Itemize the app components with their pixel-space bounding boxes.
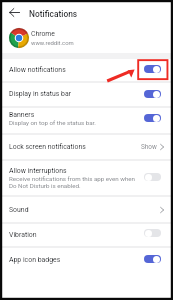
staticText: Banners — [9, 111, 35, 119]
button[interactable]: Toggle off — [144, 173, 161, 181]
button[interactable]: Toggle off — [144, 229, 161, 237]
button[interactable]: Toggle on — [144, 255, 161, 263]
button[interactable]: Banners — [2, 108, 171, 133]
staticText: www.reddit.com — [31, 40, 74, 47]
staticText: Allow notifications — [9, 66, 66, 74]
staticText: App icon badges — [9, 256, 61, 264]
staticText: Receive notifications from this app even… — [9, 175, 135, 189]
button[interactable]: Allow interruptions — [2, 161, 171, 195]
button[interactable]: Toggle on — [144, 114, 161, 122]
staticText: Lock screen notifications — [9, 143, 86, 151]
button[interactable]: Display in status bar — [2, 83, 171, 106]
staticText: Show — [141, 143, 157, 151]
staticText: Sound — [9, 206, 29, 214]
button[interactable]: Vibration — [2, 224, 171, 246]
button[interactable]: Allow notifications — [2, 59, 171, 81]
staticText: Allow interruptions — [9, 167, 67, 175]
button[interactable]: Chrome — [2, 26, 171, 53]
button[interactable]: Back — [8, 6, 21, 19]
staticText: Vibration — [9, 231, 37, 239]
button[interactable]: Sound — [2, 197, 171, 222]
staticText: Display on top of the status bar. — [9, 119, 96, 126]
staticText: Chrome — [31, 30, 55, 38]
button[interactable]: Toggle on — [144, 65, 161, 73]
button[interactable]: Lock screen notifications — [2, 135, 171, 159]
staticText: Notifications — [29, 9, 78, 19]
button[interactable]: Toggle on — [144, 90, 161, 98]
staticText: Display in status bar — [9, 90, 71, 98]
button[interactable]: App icon badges — [2, 248, 171, 272]
